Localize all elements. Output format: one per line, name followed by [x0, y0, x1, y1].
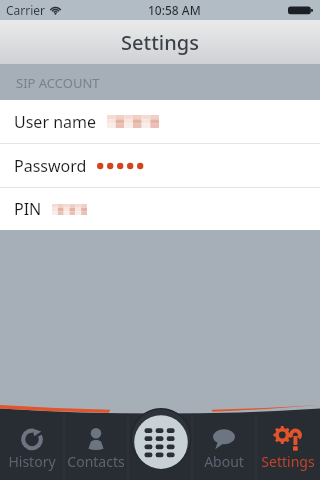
staticText: About: [204, 452, 244, 471]
staticText: SIP ACCOUNT: [16, 74, 100, 92]
button[interactable]: PIN: [0, 188, 320, 230]
button[interactable]: User name: [0, 100, 320, 143]
staticText: Carrier: [6, 2, 46, 18]
staticText: User name: [14, 111, 97, 133]
button[interactable]: History: [0, 406, 64, 480]
staticText: 10:58 AM: [148, 2, 201, 18]
staticText: PIN: [14, 198, 42, 220]
button[interactable]: Settings: [256, 406, 320, 480]
button[interactable]: About: [192, 406, 256, 480]
staticText: Password: [14, 155, 87, 177]
staticText: Settings: [121, 29, 199, 56]
button[interactable]: Contacts: [64, 406, 128, 480]
staticText: History: [8, 452, 56, 471]
button[interactable]: Password: [0, 144, 320, 187]
staticText: Contacts: [67, 452, 125, 471]
staticText: Settings: [261, 452, 315, 471]
button[interactable]: Dialpad: [129, 408, 193, 472]
